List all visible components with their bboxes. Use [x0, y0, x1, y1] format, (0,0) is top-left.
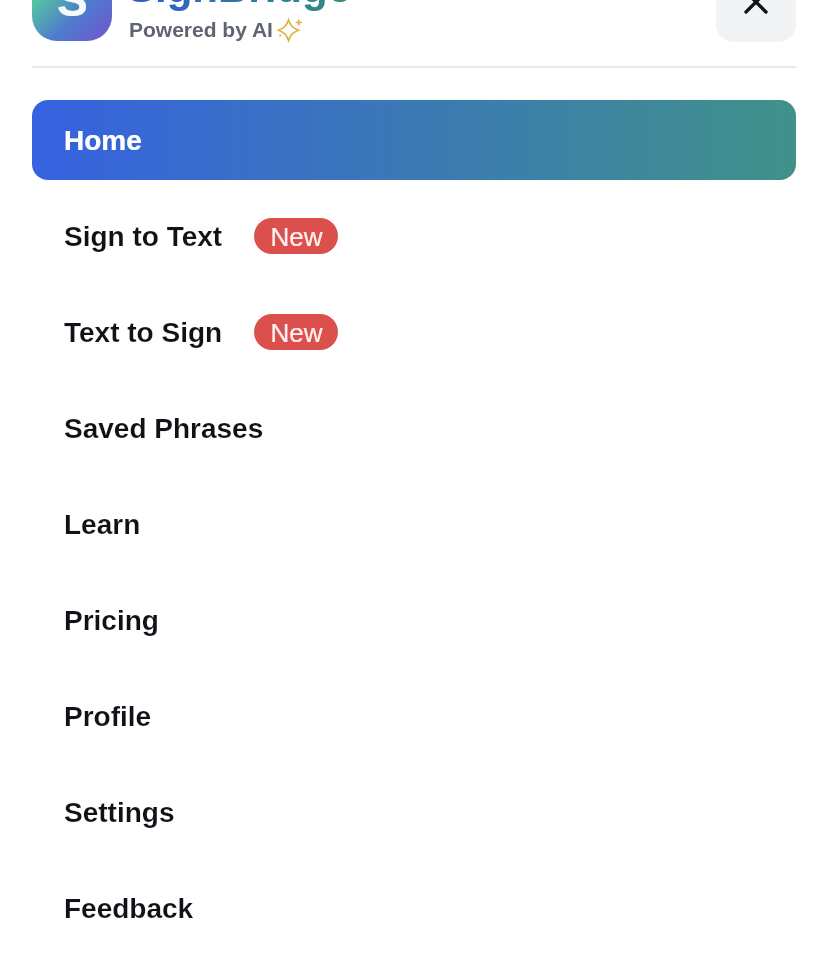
staticText: Sign to Text	[64, 221, 223, 252]
button[interactable]: Learn	[0, 476, 828, 572]
staticText: Learn	[64, 509, 141, 540]
staticText: Text to Sign	[64, 317, 223, 348]
button[interactable]: Pricing	[0, 572, 828, 668]
button[interactable]: Saved Phrases	[0, 380, 828, 476]
button[interactable]: Feedback	[0, 860, 828, 956]
button[interactable]: Text to Sign	[0, 284, 828, 380]
staticText: Pricing	[64, 605, 159, 636]
button[interactable]: Close	[716, 0, 796, 42]
button[interactable]: Home	[32, 100, 796, 180]
staticText: New	[270, 222, 323, 251]
button[interactable]: Sign to Text	[0, 188, 828, 284]
staticText: Saved Phrases	[64, 413, 264, 444]
staticText: SignBridge	[127, 0, 352, 11]
button[interactable]: Settings	[0, 764, 828, 860]
staticText: Settings	[64, 797, 175, 828]
staticText: Feedback	[64, 893, 194, 924]
staticText: Home	[64, 125, 142, 156]
staticText: New	[270, 318, 323, 347]
button[interactable]: Profile	[0, 668, 828, 764]
staticText: S	[57, 0, 88, 25]
staticText: Profile	[64, 701, 152, 732]
staticText: Powered by AI	[129, 18, 273, 41]
